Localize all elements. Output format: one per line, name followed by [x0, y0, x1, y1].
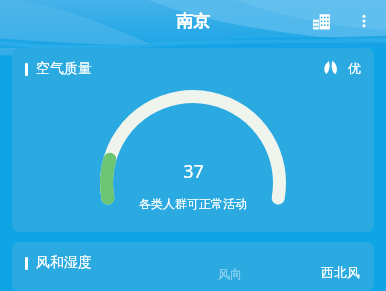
staticText: 优 [348, 60, 361, 76]
button[interactable]: 风和湿度 [12, 242, 374, 291]
staticText: 各类人群可正常活动 [139, 196, 247, 211]
staticText: 风和湿度 [36, 254, 92, 272]
staticText: 37 [183, 159, 204, 184]
staticText: 南京 [176, 11, 210, 32]
staticText: 风向 [218, 266, 242, 281]
staticText: 西北风 [321, 264, 360, 280]
staticText: 空气质量 [36, 60, 92, 78]
button[interactable]: More options [348, 5, 380, 37]
button[interactable]: 空气质量 [12, 48, 374, 232]
button[interactable]: Cities [305, 5, 337, 37]
